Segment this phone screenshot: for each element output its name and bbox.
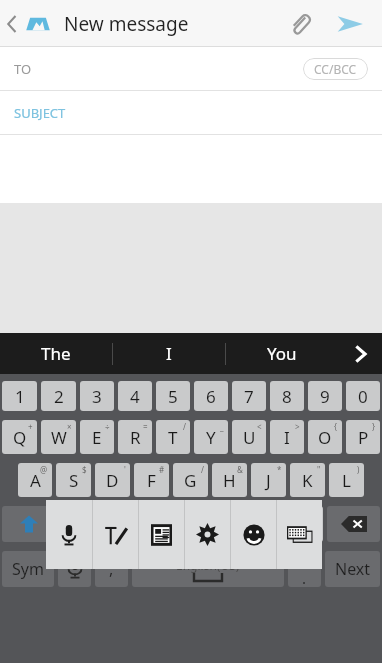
staticText: . xyxy=(302,568,307,587)
button[interactable]: 8 xyxy=(270,381,304,411)
staticText: O xyxy=(318,426,332,449)
button[interactable]: The xyxy=(0,333,112,374)
staticText: M xyxy=(298,513,314,536)
staticText: } xyxy=(372,421,376,432)
button[interactable]: More suggestions xyxy=(338,333,382,374)
button[interactable]: Next xyxy=(325,551,380,587)
staticText: / xyxy=(201,464,204,475)
button[interactable]: G xyxy=(173,463,208,497)
button[interactable]: Sym xyxy=(2,551,54,587)
button[interactable]: Back xyxy=(2,4,22,44)
button[interactable]: Clipboard xyxy=(139,500,184,569)
staticText: 2 xyxy=(54,385,64,408)
button[interactable]: N xyxy=(251,506,285,542)
staticText: D xyxy=(106,469,119,492)
staticText: CC/BCC xyxy=(314,61,357,77)
button[interactable]: Voice input xyxy=(58,551,91,587)
button[interactable]: Period xyxy=(288,551,321,587)
button[interactable]: L xyxy=(329,463,364,497)
staticText: + xyxy=(28,421,33,432)
button[interactable]: K xyxy=(290,463,325,497)
button[interactable]: A xyxy=(18,463,52,497)
button[interactable]: W xyxy=(41,420,76,454)
button[interactable]: M xyxy=(289,506,323,542)
button[interactable]: I xyxy=(270,420,304,454)
button[interactable]: CC/BCC xyxy=(303,58,368,80)
button[interactable]: Attach xyxy=(278,2,322,46)
staticText: SUBJECT xyxy=(14,104,66,122)
button[interactable]: Shift xyxy=(2,506,56,542)
button[interactable]: O xyxy=(308,420,342,454)
button[interactable]: Handwriting xyxy=(93,500,138,569)
button[interactable]: 7 xyxy=(232,381,266,411)
button[interactable]: Backspace xyxy=(327,506,380,542)
button[interactable]: S xyxy=(56,463,91,497)
button[interactable]: 6 xyxy=(194,381,228,411)
button[interactable]: H xyxy=(212,463,247,497)
button[interactable]: Settings xyxy=(185,500,230,569)
staticText: ) xyxy=(357,464,360,475)
staticText: H xyxy=(223,469,236,492)
button[interactable]: SUBJECT xyxy=(0,91,382,135)
button[interactable]: TO xyxy=(0,47,382,91)
button[interactable]: J xyxy=(251,463,286,497)
staticText: I xyxy=(166,342,172,365)
button[interactable]: Emoji xyxy=(231,500,276,569)
button[interactable]: B xyxy=(213,506,247,542)
button[interactable]: 5 xyxy=(156,381,190,411)
staticText: 0 xyxy=(358,385,368,408)
staticText: @ xyxy=(40,464,48,475)
staticText: 5 xyxy=(168,385,178,408)
staticText: TO xyxy=(14,60,32,78)
button[interactable]: 2 xyxy=(41,381,76,411)
button[interactable]: P xyxy=(346,420,380,454)
staticText: X xyxy=(111,513,121,536)
button[interactable]: Send xyxy=(328,2,372,46)
button[interactable]: Voice input xyxy=(46,500,92,569)
button[interactable]: U xyxy=(232,420,266,454)
staticText: Next xyxy=(335,558,371,580)
staticText: Y xyxy=(206,426,216,449)
staticText: Z xyxy=(73,513,83,536)
staticText: { xyxy=(334,421,338,432)
staticText: The xyxy=(41,342,71,365)
staticText: G xyxy=(184,469,197,492)
button[interactable]: R xyxy=(118,420,152,454)
button[interactable]: 4 xyxy=(118,381,152,411)
button[interactable]: Space xyxy=(132,551,284,587)
button[interactable]: 9 xyxy=(308,381,342,411)
button[interactable]: D xyxy=(95,463,130,497)
button[interactable]: V xyxy=(175,506,209,542)
button[interactable]: , xyxy=(95,551,128,587)
button[interactable]: C xyxy=(137,506,171,542)
staticText: $ xyxy=(82,464,87,475)
staticText: I xyxy=(284,426,290,449)
button[interactable]: Y xyxy=(194,420,228,454)
button[interactable]: 1 xyxy=(2,381,37,411)
staticText: 9 xyxy=(320,385,330,408)
staticText: Q xyxy=(13,426,27,449)
staticText: C xyxy=(149,513,160,536)
button[interactable]: 0 xyxy=(346,381,380,411)
button[interactable]: Z xyxy=(60,506,95,542)
button[interactable]: I xyxy=(113,333,225,374)
button[interactable]: E xyxy=(80,420,114,454)
staticText: ' xyxy=(124,464,126,475)
button[interactable]: T xyxy=(156,420,190,454)
staticText: 7 xyxy=(244,385,254,408)
staticText: , xyxy=(109,558,114,580)
button[interactable]: 3 xyxy=(80,381,114,411)
button[interactable]: Q xyxy=(2,420,37,454)
button[interactable]: You xyxy=(226,333,338,374)
button[interactable]: Switch keyboard xyxy=(277,500,322,569)
staticText: 3 xyxy=(92,385,102,408)
staticText: ÷ xyxy=(105,421,110,432)
button[interactable]: X xyxy=(99,506,133,542)
staticText: * xyxy=(277,464,282,475)
button[interactable]: F xyxy=(134,463,169,497)
